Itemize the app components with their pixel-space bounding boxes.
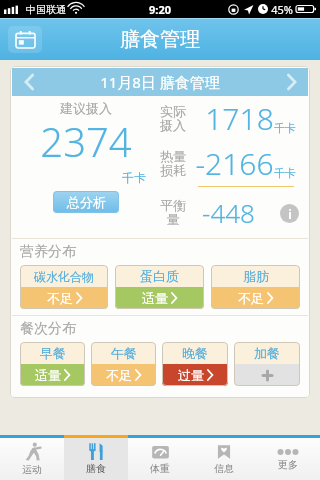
staticText: -2166 bbox=[195, 143, 274, 184]
button[interactable]: 总分析 bbox=[53, 191, 119, 213]
button[interactable]: Info bbox=[278, 198, 300, 228]
button[interactable]: 碳水化合物 bbox=[20, 265, 108, 309]
staticText: 蛋白质 bbox=[140, 268, 179, 284]
staticText: 不足 bbox=[106, 367, 132, 383]
staticText: 千卡 bbox=[274, 166, 296, 180]
staticText: 适量 bbox=[142, 290, 168, 306]
button[interactable]: 脂肪 bbox=[211, 265, 300, 309]
staticText: 餐次分布 bbox=[20, 320, 76, 338]
staticText: 千卡 bbox=[274, 121, 296, 135]
staticText: 热量 损耗 bbox=[160, 148, 186, 179]
staticText: 建议摄入 bbox=[60, 100, 112, 116]
staticText: 1718 bbox=[205, 98, 274, 139]
staticText: 运动 bbox=[22, 463, 42, 476]
staticText: 过量 bbox=[178, 367, 204, 383]
staticText: 信息 bbox=[214, 462, 234, 475]
button[interactable]: 早餐 bbox=[20, 342, 85, 386]
staticText: 体重 bbox=[150, 462, 170, 475]
staticText: 更多 bbox=[278, 458, 298, 471]
button[interactable]: 加餐 bbox=[234, 342, 300, 386]
staticText: 脂肪 bbox=[243, 268, 269, 284]
button[interactable]: Previous day bbox=[12, 68, 46, 96]
button[interactable]: Next day bbox=[274, 68, 308, 96]
button[interactable]: 体重 bbox=[128, 438, 192, 480]
staticText: i bbox=[288, 206, 292, 222]
staticText: 午餐 bbox=[111, 345, 137, 361]
staticText: 适量 bbox=[35, 367, 61, 383]
staticText: 实际 摄入 bbox=[160, 103, 186, 134]
staticText: -448 bbox=[202, 195, 255, 230]
staticText: 加餐 bbox=[254, 345, 280, 361]
staticText: 千卡 bbox=[122, 170, 146, 185]
button[interactable]: 晚餐 bbox=[162, 342, 228, 386]
staticText: 总分析 bbox=[67, 194, 106, 210]
staticText: 9:20 bbox=[149, 2, 171, 17]
button[interactable]: 午餐 bbox=[91, 342, 156, 386]
staticText: 2374 bbox=[40, 114, 132, 168]
staticText: 中国联通 bbox=[26, 3, 66, 16]
staticText: 11月8日 膳食管理 bbox=[100, 72, 220, 92]
staticText: 早餐 bbox=[40, 345, 66, 361]
button[interactable]: Calendar bbox=[8, 26, 42, 53]
button[interactable]: 膳食 bbox=[64, 438, 128, 480]
staticText: 平衡 量 bbox=[160, 197, 186, 228]
staticText: 不足 bbox=[238, 290, 264, 306]
button[interactable]: 运动 bbox=[0, 438, 64, 480]
staticText: 晚餐 bbox=[182, 345, 208, 361]
button[interactable]: 信息 bbox=[192, 438, 256, 480]
staticText: 膳食 bbox=[86, 462, 106, 475]
staticText: 不足 bbox=[47, 290, 73, 306]
staticText: 碳水化合物 bbox=[34, 269, 94, 284]
button[interactable]: 蛋白质 bbox=[115, 265, 204, 309]
button[interactable]: 更多 bbox=[256, 438, 320, 480]
staticText: 膳食管理 bbox=[120, 27, 200, 52]
staticText: 45% bbox=[271, 2, 293, 17]
staticText: 营养分布 bbox=[20, 243, 76, 261]
